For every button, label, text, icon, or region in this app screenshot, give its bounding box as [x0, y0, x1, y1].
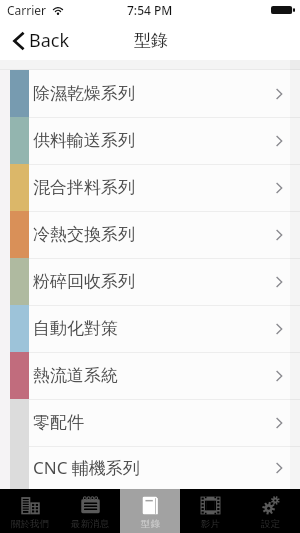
button[interactable]: 除濕乾燥系列: [0, 70, 300, 117]
staticText: 7:54 PM: [127, 2, 173, 18]
staticText: 冷熱交換系列: [33, 224, 135, 245]
button[interactable]: 供料輸送系列: [0, 117, 300, 164]
button[interactable]: CNC 輔機系列: [0, 446, 300, 489]
button[interactable]: 冷熱交換系列: [0, 211, 300, 258]
button[interactable]: 型錄: [120, 489, 180, 533]
button[interactable]: 設定: [240, 489, 300, 533]
staticText: Carrier: [7, 2, 47, 18]
staticText: 除濕乾燥系列: [33, 83, 135, 104]
staticText: 熱流道系統: [33, 365, 118, 386]
staticText: CNC 輔機系列: [33, 456, 140, 479]
button[interactable]: 自動化對策: [0, 305, 300, 352]
button[interactable]: 熱流道系統: [0, 352, 300, 399]
staticText: 關於我們: [11, 518, 49, 530]
button[interactable]: 最新消息: [60, 489, 120, 533]
staticText: 型錄: [141, 518, 160, 530]
button[interactable]: 影片: [180, 489, 240, 533]
button[interactable]: 關於我們: [0, 489, 60, 533]
staticText: 零配件: [33, 412, 84, 433]
staticText: 設定: [261, 518, 280, 530]
staticText: 自動化對策: [33, 318, 118, 339]
staticText: 影片: [201, 518, 220, 530]
staticText: 最新消息: [71, 518, 109, 530]
staticText: 粉碎回收系列: [33, 271, 135, 292]
staticText: 混合拌料系列: [33, 177, 135, 198]
staticText: 型錄: [134, 30, 168, 51]
button[interactable]: 混合拌料系列: [0, 164, 300, 211]
button[interactable]: 零配件: [0, 399, 300, 446]
staticText: 供料輸送系列: [33, 130, 135, 151]
button[interactable]: 粉碎回收系列: [0, 258, 300, 305]
button[interactable]: Back: [13, 23, 70, 57]
staticText: Back: [29, 28, 70, 53]
